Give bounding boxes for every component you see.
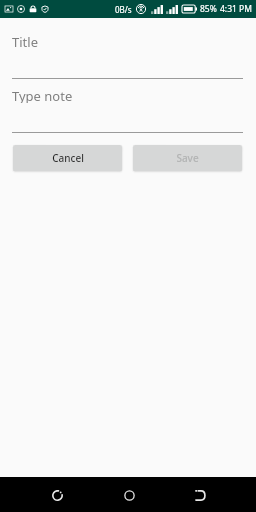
button[interactable]: Home bbox=[112, 478, 146, 512]
staticText: 85% bbox=[200, 3, 217, 15]
staticText: 0B/s bbox=[115, 4, 132, 15]
button[interactable]: Cancel bbox=[13, 145, 122, 171]
staticText: Title bbox=[12, 33, 38, 49]
button[interactable]: Recent apps bbox=[40, 478, 74, 512]
staticText: 4:31 PM bbox=[220, 3, 252, 15]
staticText: Type note bbox=[12, 87, 73, 103]
staticText: Save bbox=[176, 151, 199, 165]
button[interactable]: Save bbox=[133, 145, 242, 171]
staticText: Cancel bbox=[52, 151, 84, 165]
button[interactable]: Back bbox=[183, 478, 217, 512]
